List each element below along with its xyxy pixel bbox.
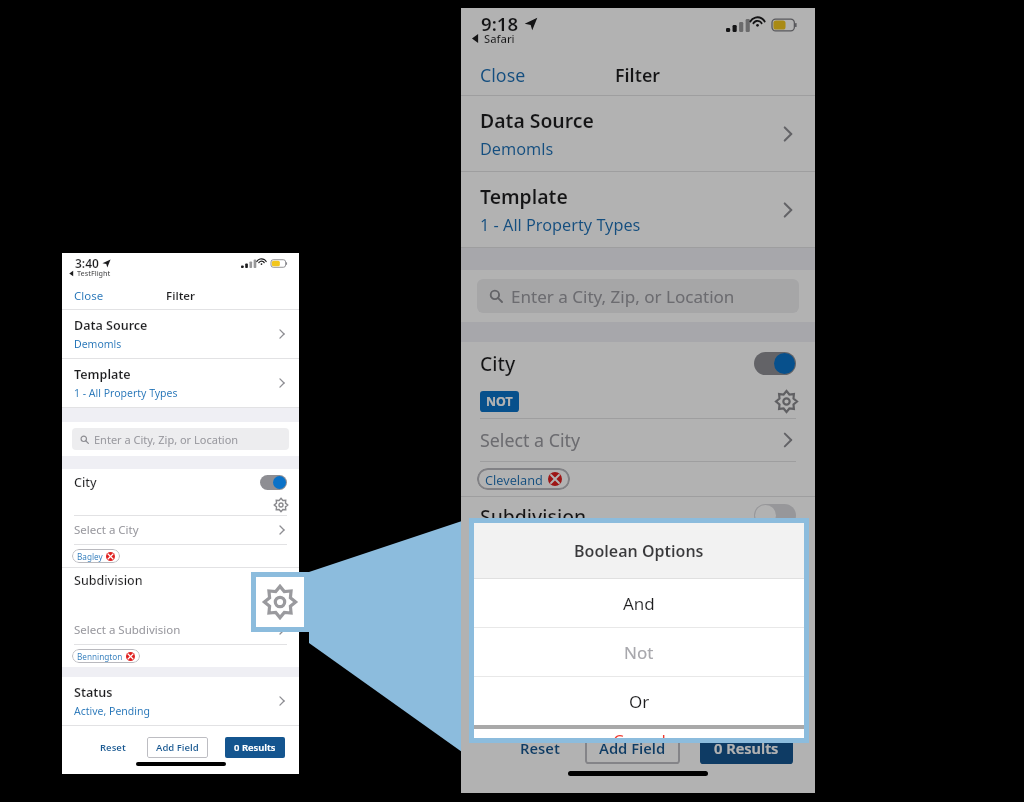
button[interactable]: Reset <box>514 732 566 764</box>
staticText: 1 - All Property Types <box>480 214 641 236</box>
staticText: Or <box>629 690 650 713</box>
button[interactable]: 0 Results <box>700 732 793 764</box>
button[interactable]: Toggle on <box>754 352 796 375</box>
button[interactable]: Status <box>62 677 299 725</box>
staticText: Template <box>74 366 131 383</box>
button[interactable]: Add Field <box>147 737 208 758</box>
button[interactable]: Template <box>62 359 299 407</box>
staticText: Add Field <box>599 738 666 758</box>
staticText: Demomls <box>74 337 122 351</box>
staticText: Filter <box>615 63 661 87</box>
staticText: NOT <box>486 393 513 410</box>
staticText: 1 - All Property Types <box>74 386 178 400</box>
staticText: Status <box>74 684 113 701</box>
button[interactable]: Add Field <box>585 732 680 764</box>
staticText: Reset <box>520 738 560 758</box>
staticText: And <box>623 592 655 615</box>
staticText: Bennington <box>77 651 123 662</box>
staticText: Subdivision <box>480 503 587 529</box>
staticText: 9:18 <box>481 11 519 36</box>
button[interactable]: Not <box>474 628 804 676</box>
button[interactable]: Close <box>62 285 104 307</box>
staticText: Not <box>624 641 654 664</box>
staticText: Active, Pending <box>74 704 150 718</box>
button[interactable]: Select a Subdivision <box>62 616 299 644</box>
button[interactable]: Enter a City, Zip, or Location <box>477 279 799 313</box>
button[interactable]: 0 Results <box>225 737 285 758</box>
button[interactable]: Toggle on <box>260 475 287 490</box>
button[interactable]: Bennington <box>72 649 140 663</box>
staticText: Select a City <box>74 522 139 538</box>
staticText: TestFlight <box>77 268 111 278</box>
staticText: Add Field <box>156 741 199 754</box>
button[interactable]: Bagley <box>72 549 120 563</box>
staticText: Data Source <box>480 107 594 133</box>
staticText: Demomls <box>480 138 554 160</box>
button[interactable]: Data Source <box>62 310 299 358</box>
button[interactable]: Select a City <box>461 419 815 461</box>
button[interactable]: Or <box>474 677 804 725</box>
button[interactable]: NOT <box>480 391 519 412</box>
staticText: Select a Subdivision <box>74 622 181 638</box>
button[interactable]: Toggle on <box>260 573 287 588</box>
staticText: Reset <box>100 741 126 754</box>
staticText: 3:40 <box>75 255 99 271</box>
button[interactable]: Cleveland <box>477 468 570 490</box>
staticText: Cancel <box>613 729 666 738</box>
staticText: City <box>480 350 516 376</box>
staticText: Cleveland <box>485 471 543 488</box>
staticText: Template <box>480 183 568 209</box>
staticText: Data Source <box>74 317 148 334</box>
button[interactable]: Boolean options <box>273 497 289 513</box>
staticText: 0 Results <box>714 738 779 758</box>
staticText: Safari <box>484 31 515 46</box>
staticText: Enter a City, Zip, or Location <box>511 285 735 308</box>
staticText: Enter a City, Zip, or Location <box>94 432 239 447</box>
staticText: City <box>74 474 97 491</box>
staticText: Boolean Options <box>574 540 704 562</box>
button[interactable]: Boolean options <box>774 389 799 414</box>
button[interactable]: Template <box>461 172 815 247</box>
button[interactable]: Boolean options gear <box>256 577 304 627</box>
staticText: Select a City <box>480 428 581 452</box>
staticText: Filter <box>166 288 196 304</box>
button[interactable]: Select a City <box>62 516 299 544</box>
button[interactable]: Reset <box>96 737 130 758</box>
staticText: Subdivision <box>74 572 143 589</box>
button[interactable]: Toggle off <box>754 504 796 527</box>
button[interactable]: Enter a City, Zip, or Location <box>72 428 289 450</box>
staticText: Bagley <box>77 551 103 562</box>
button[interactable]: Data Source <box>461 96 815 171</box>
staticText: 0 Results <box>234 741 276 754</box>
button[interactable]: Cancel <box>474 729 804 738</box>
button[interactable]: And <box>474 579 804 627</box>
button[interactable]: Close <box>461 58 526 92</box>
